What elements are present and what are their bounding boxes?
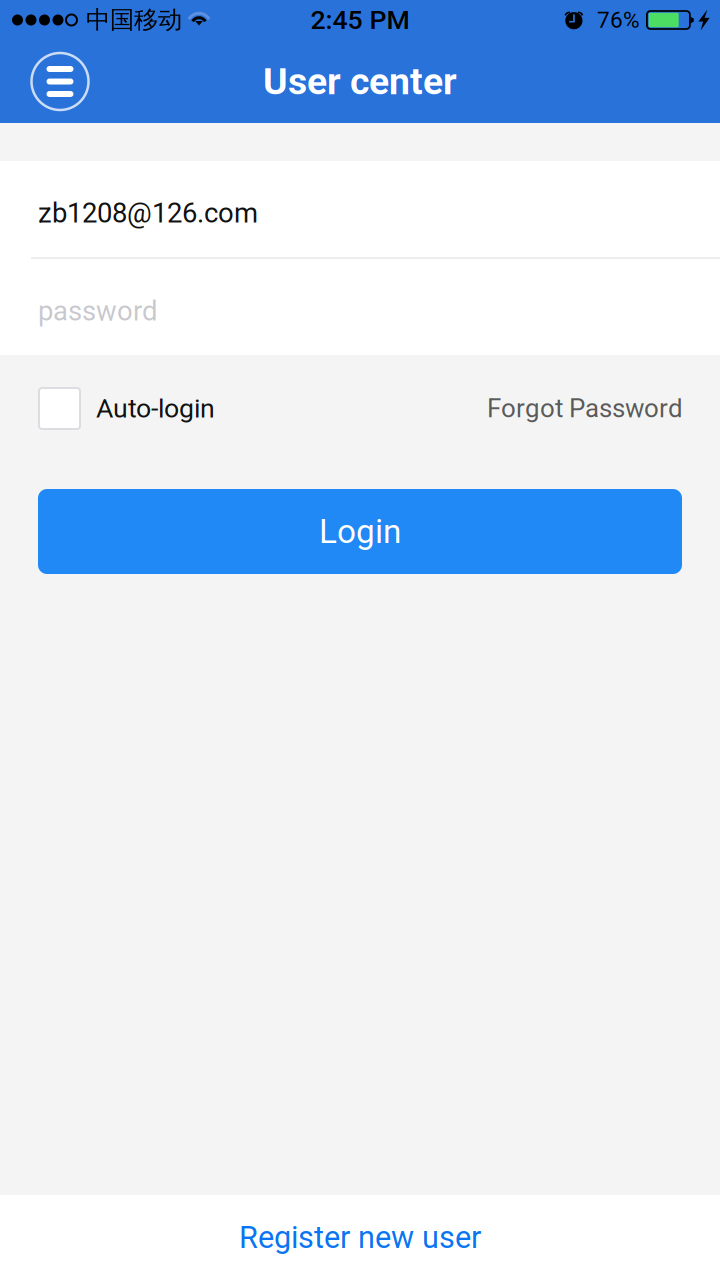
button[interactable]: Register new user [0, 1195, 720, 1280]
staticText: 76% [597, 7, 640, 33]
button[interactable]: Menu [29, 50, 91, 112]
staticText: Login [319, 512, 401, 551]
staticText: 中国移动 [86, 5, 182, 35]
staticText: Auto-login [96, 393, 215, 424]
staticText: 2:45 PM [310, 4, 409, 36]
staticText: password [38, 295, 157, 327]
staticText: zb1208@126.com [38, 197, 258, 229]
staticText: User center [263, 60, 457, 103]
staticText: Forgot Password [487, 393, 683, 424]
button[interactable]: Forgot Password [487, 393, 683, 424]
staticText: Register new user [239, 1219, 481, 1255]
button[interactable]: Login [38, 489, 682, 574]
button[interactable]: Auto-login [39, 388, 215, 429]
